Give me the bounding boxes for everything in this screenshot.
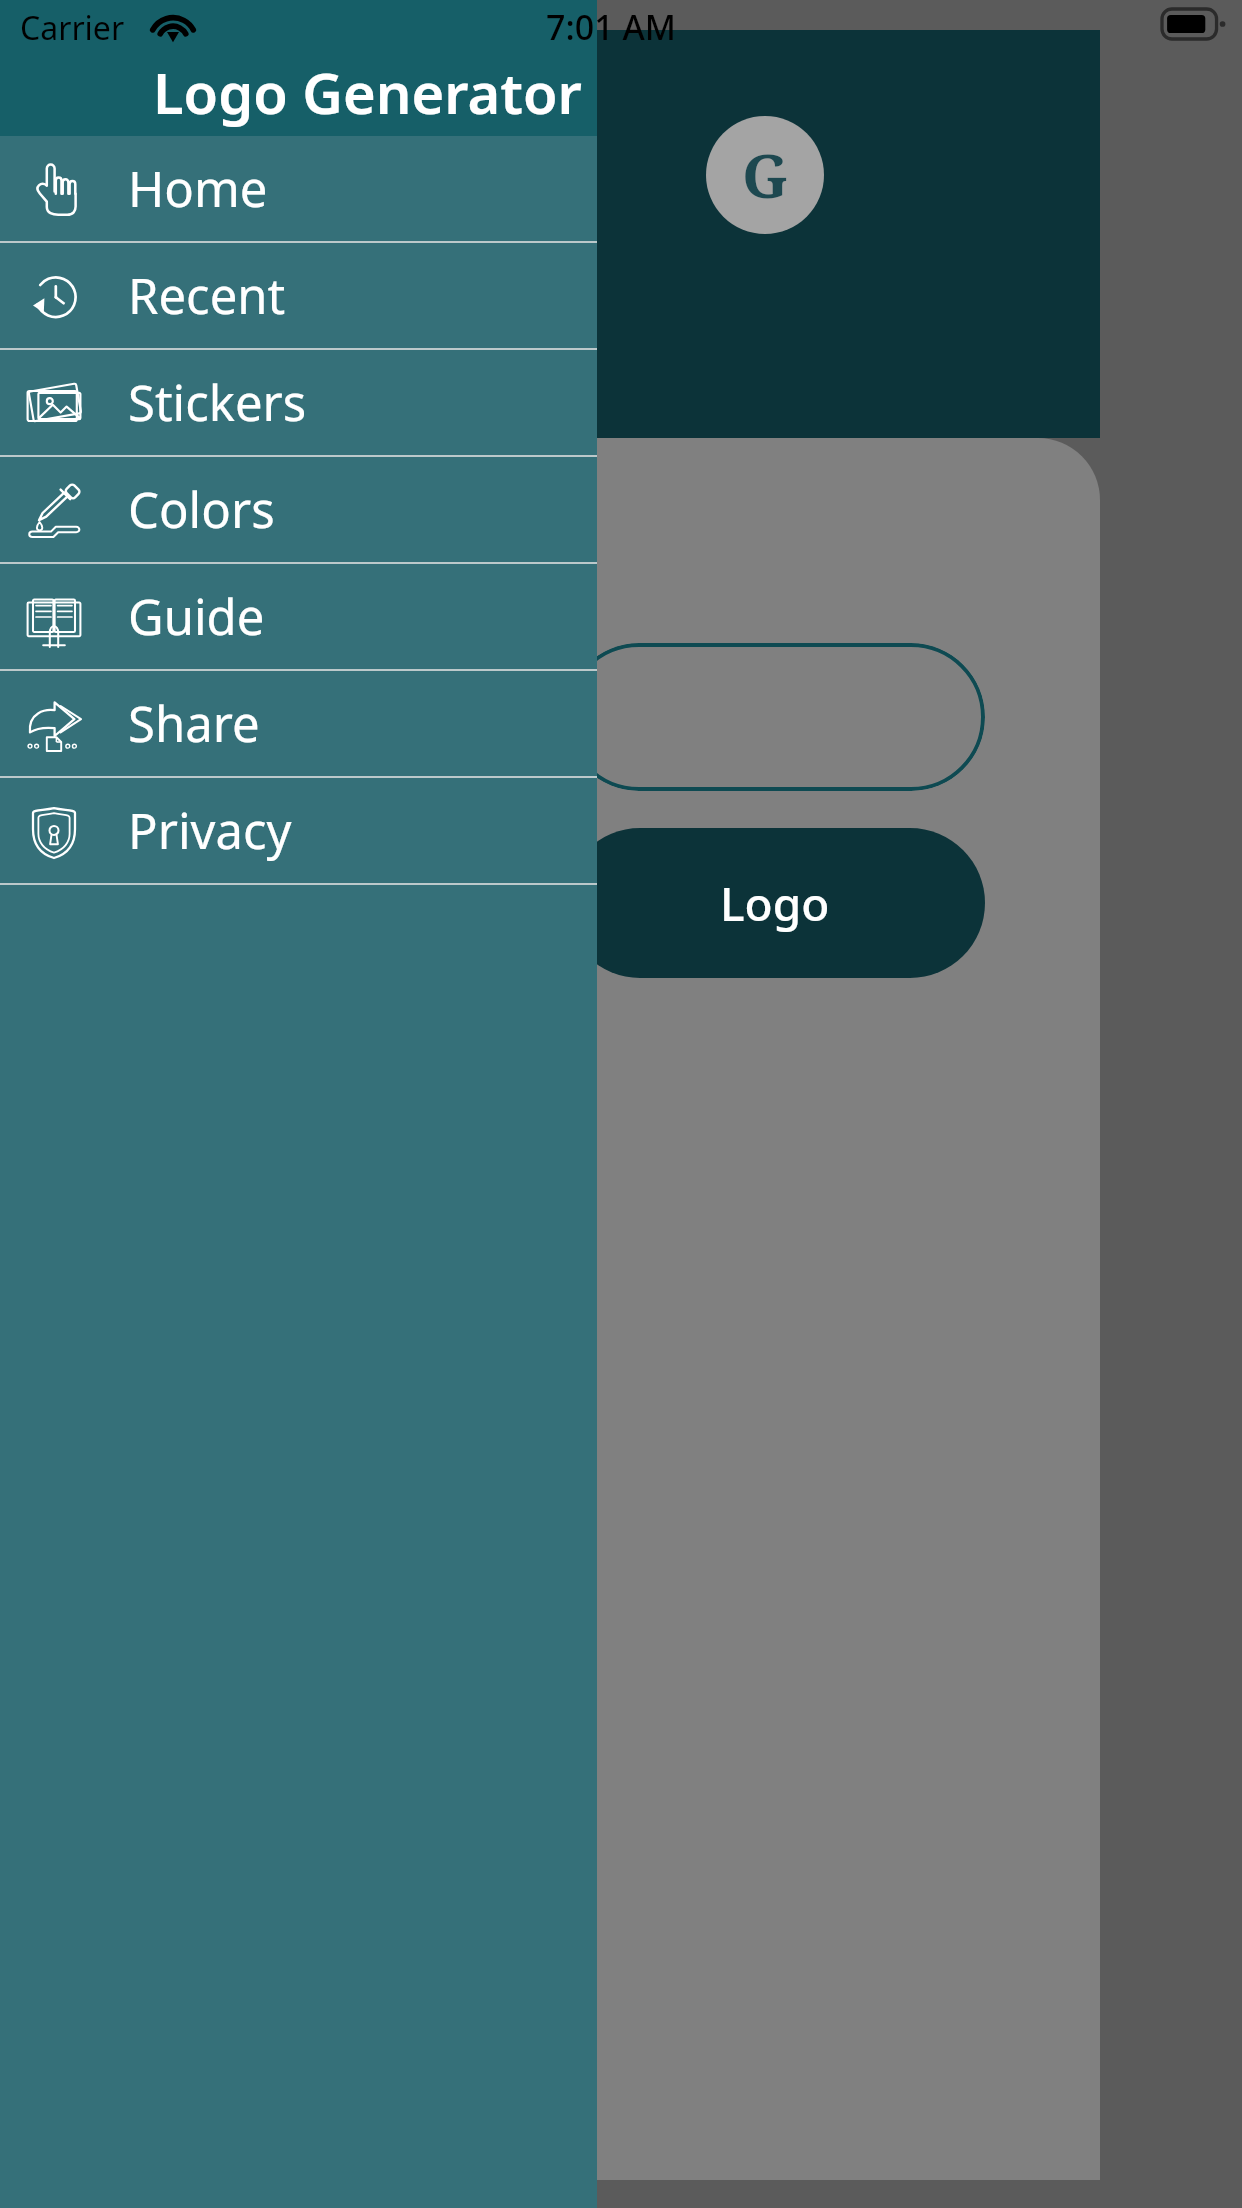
other: Battery bbox=[1162, 9, 1224, 39]
button[interactable] bbox=[565, 643, 985, 791]
button[interactable]: G bbox=[706, 116, 824, 234]
staticText: Logo bbox=[720, 872, 830, 935]
staticText: Guide bbox=[128, 583, 265, 650]
staticText: G bbox=[742, 134, 789, 216]
staticText: Colors bbox=[128, 476, 275, 543]
button[interactable]: Share bbox=[0, 671, 597, 776]
staticText: Stickers bbox=[128, 369, 307, 436]
staticText: Logo Generator bbox=[153, 54, 582, 130]
button[interactable]: Logo bbox=[565, 828, 985, 978]
button[interactable]: Privacy bbox=[0, 778, 597, 883]
button[interactable]: Home bbox=[0, 136, 597, 241]
staticText: 7:01 AM bbox=[546, 4, 676, 50]
staticText: Home bbox=[128, 155, 268, 222]
staticText: Privacy bbox=[128, 797, 292, 864]
button[interactable]: Guide bbox=[0, 564, 597, 669]
button[interactable]: Stickers bbox=[0, 350, 597, 455]
other: Wi-Fi bbox=[150, 11, 196, 44]
button[interactable]: Recent bbox=[0, 243, 597, 348]
button[interactable]: Colors bbox=[0, 457, 597, 562]
staticText: Recent bbox=[128, 262, 286, 329]
staticText: Share bbox=[128, 690, 260, 757]
staticText: Carrier bbox=[20, 6, 125, 50]
